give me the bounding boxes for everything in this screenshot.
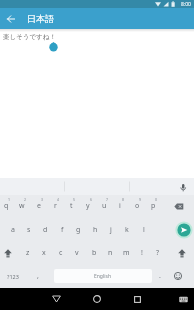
- staticText: 0: [155, 197, 158, 202]
- button[interactable]: i: [112, 194, 128, 218]
- staticText: p: [151, 201, 156, 211]
- button[interactable]: j: [103, 218, 119, 242]
- button[interactable]: u: [96, 194, 112, 218]
- button[interactable]: p: [145, 194, 161, 218]
- staticText: 8: [122, 197, 125, 202]
- staticText: 日本語: [27, 13, 54, 24]
- button[interactable]: [173, 242, 191, 264]
- staticText: 8:00: [181, 1, 191, 8]
- button[interactable]: [46, 288, 67, 310]
- staticText: w: [19, 201, 25, 211]
- button[interactable]: English: [54, 269, 152, 283]
- staticText: ,: [37, 271, 39, 281]
- button[interactable]: [0, 242, 17, 264]
- button[interactable]: ?: [150, 242, 166, 264]
- staticText: ?: [156, 248, 160, 258]
- button[interactable]: ?123: [1, 264, 24, 288]
- staticText: k: [125, 225, 129, 235]
- button[interactable]: t: [63, 194, 79, 218]
- button[interactable]: d: [37, 218, 53, 242]
- staticText: b: [92, 248, 97, 258]
- staticText: z: [26, 248, 30, 258]
- staticText: r: [54, 201, 57, 211]
- button[interactable]: [0, 8, 22, 29]
- staticText: 6: [90, 197, 93, 202]
- button[interactable]: q: [0, 194, 14, 218]
- staticText: l: [143, 225, 145, 235]
- button[interactable]: [127, 288, 148, 310]
- staticText: e: [37, 201, 41, 211]
- staticText: f: [61, 225, 64, 235]
- button[interactable]: x: [36, 242, 52, 264]
- button[interactable]: c: [53, 242, 69, 264]
- staticText: t: [70, 201, 73, 211]
- button[interactable]: ,: [30, 264, 46, 288]
- staticText: ?123: [7, 273, 19, 280]
- staticText: !: [141, 248, 143, 258]
- staticText: s: [27, 225, 31, 235]
- button[interactable]: h: [87, 218, 103, 242]
- button[interactable]: [166, 194, 192, 218]
- staticText: n: [108, 248, 113, 258]
- button[interactable]: !: [134, 242, 150, 264]
- staticText: 3: [41, 197, 44, 202]
- button[interactable]: a: [5, 218, 21, 242]
- button[interactable]: k: [119, 218, 135, 242]
- staticText: c: [59, 248, 63, 258]
- staticText: 5: [73, 197, 76, 202]
- staticText: x: [42, 248, 46, 258]
- button[interactable]: 楽しそうですね！: [3, 33, 56, 41]
- staticText: g: [76, 225, 81, 235]
- button[interactable]: b: [86, 242, 102, 264]
- staticText: 7: [106, 197, 109, 202]
- button[interactable]: n: [102, 242, 118, 264]
- button[interactable]: l: [136, 218, 152, 242]
- button[interactable]: v: [69, 242, 85, 264]
- staticText: 2: [24, 197, 27, 202]
- staticText: v: [75, 248, 79, 258]
- staticText: 4: [57, 197, 60, 202]
- button[interactable]: [173, 288, 193, 310]
- staticText: .: [159, 271, 161, 281]
- button[interactable]: o: [129, 194, 145, 218]
- button[interactable]: m: [118, 242, 134, 264]
- staticText: i: [119, 201, 121, 211]
- staticText: m: [123, 248, 130, 258]
- staticText: d: [43, 225, 48, 235]
- staticText: 1: [8, 197, 11, 202]
- staticText: q: [4, 201, 9, 211]
- staticText: a: [11, 225, 15, 235]
- staticText: o: [135, 201, 140, 211]
- button[interactable]: e: [31, 194, 47, 218]
- button[interactable]: w: [14, 194, 30, 218]
- staticText: u: [102, 201, 107, 211]
- button[interactable]: r: [47, 194, 63, 218]
- button[interactable]: f: [54, 218, 70, 242]
- staticText: y: [86, 201, 90, 211]
- staticText: English: [94, 273, 112, 280]
- button[interactable]: s: [21, 218, 37, 242]
- button[interactable]: y: [80, 194, 96, 218]
- button[interactable]: [86, 288, 107, 310]
- button[interactable]: [174, 220, 194, 240]
- button[interactable]: [169, 264, 187, 288]
- staticText: j: [110, 225, 112, 235]
- button[interactable]: z: [20, 242, 36, 264]
- button[interactable]: g: [70, 218, 86, 242]
- staticText: 9: [139, 197, 142, 202]
- staticText: h: [93, 225, 98, 235]
